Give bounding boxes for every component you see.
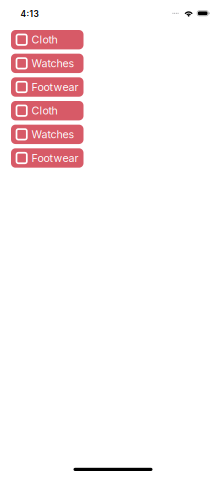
button[interactable]: Cloth [11, 101, 83, 120]
staticText: Cloth [31, 104, 57, 117]
staticText: Cloth [31, 33, 57, 46]
staticText: Watches [31, 128, 74, 141]
staticText: Footwear [31, 151, 78, 164]
staticText: 4:13 [20, 9, 38, 19]
button[interactable]: Footwear [11, 148, 83, 168]
staticText: Footwear [31, 81, 78, 93]
button[interactable]: Cloth [11, 30, 83, 49]
button[interactable]: Watches [11, 54, 83, 73]
staticText: Watches [31, 57, 74, 70]
button[interactable]: Footwear [11, 77, 83, 97]
button[interactable]: Watches [11, 125, 83, 144]
